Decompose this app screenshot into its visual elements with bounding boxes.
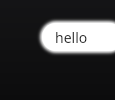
- staticText: hello: [55, 28, 88, 47]
- button[interactable]: hello: [40, 21, 115, 53]
